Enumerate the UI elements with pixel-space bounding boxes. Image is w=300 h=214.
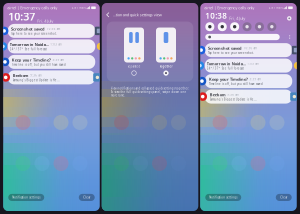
staticText: 24° / 37° See full forecast [207, 67, 244, 70]
staticText: Samsung's Biggest Update is He... [13, 78, 60, 82]
staticText: 10:36 am [244, 46, 257, 50]
staticText: 10:38 [205, 10, 227, 21]
staticText: Fri, 4 July [229, 15, 245, 21]
staticText: Keep your Timeline? [12, 57, 51, 63]
button[interactable]: Together [163, 70, 169, 76]
staticText: Clear [83, 196, 90, 199]
button[interactable]: Clear [276, 194, 292, 201]
staticText: View notifications and collapsed quick s… [110, 87, 189, 97]
staticText: 10:36 am [47, 27, 60, 31]
button[interactable]: Notification settings [205, 194, 241, 201]
staticText: 24° / 37° See full forecast [10, 47, 47, 51]
button[interactable]: Flashlight [255, 22, 264, 31]
staticText: Tomorrow in Noida... [207, 61, 246, 66]
staticText: Tap here to see your screenshot. [208, 51, 254, 55]
button[interactable]: Tomorrow in Noida... [205, 59, 292, 73]
staticText: Notification settings [12, 196, 40, 199]
button[interactable]: Beebom [8, 70, 95, 84]
button[interactable]: Bluetooth [218, 22, 227, 31]
staticText: 9:36 am [227, 93, 238, 96]
staticText: ...tion and quick settings view [113, 12, 162, 17]
staticText: Notification settings [209, 196, 237, 199]
staticText: Timeline is off, but you still have save… [12, 63, 66, 66]
button[interactable]: Wi-Fi [205, 22, 214, 31]
staticText: Beebom [210, 92, 226, 97]
button[interactable]: Keep your Timeline? [8, 55, 95, 69]
staticText: Tap here to see your screenshot. [11, 32, 57, 35]
staticText: Beebom [13, 73, 29, 78]
staticText: 4.81 KB/s [269, 6, 283, 9]
button[interactable]: Beebom [205, 90, 292, 104]
staticText: 10:37 [8, 9, 35, 24]
staticText: 3:39 am [52, 58, 63, 62]
button[interactable]: Tomorrow in Noida... [8, 39, 95, 53]
staticText: Screenshot saved [11, 26, 45, 32]
staticText: 1:03 am [247, 62, 258, 65]
staticText: Clear [280, 196, 287, 199]
button[interactable]: Clear [79, 194, 95, 201]
staticText: 3:39 am [249, 77, 260, 81]
button[interactable]: Screenshot saved [8, 24, 95, 38]
button[interactable]: Back [106, 12, 110, 18]
button[interactable]: More options [288, 34, 292, 39]
staticText: Keep your Timeline? [209, 76, 248, 82]
staticText: 1:03 am [50, 43, 61, 46]
button[interactable]: Notification settings [8, 194, 44, 201]
staticText: Separated [127, 65, 140, 68]
staticText: 9:36 am [30, 74, 41, 77]
button[interactable]: Auto rotate [242, 22, 252, 31]
staticText: Timeline is off, but you still have save… [209, 82, 263, 86]
staticText: airtel | Emergency calls only [204, 5, 254, 10]
staticText: Tomorrow in Noida... [10, 42, 49, 47]
button[interactable]: Separated [131, 70, 137, 76]
staticText: Screenshot saved [208, 45, 242, 51]
staticText: airtel | Emergency calls only [7, 5, 57, 10]
staticText: Together [159, 65, 172, 68]
button[interactable]: Screenshot saved [205, 43, 292, 57]
button[interactable]: Keep your Timeline? [205, 74, 292, 88]
button[interactable]: Sound [230, 22, 239, 31]
staticText: Samsung's Biggest Update is He... [210, 98, 257, 101]
staticText: Fri, 4 July [37, 18, 53, 23]
button[interactable]: Settings [287, 16, 292, 21]
staticText: 4.81 KB/s [72, 6, 86, 9]
button[interactable]: Power saving [267, 22, 276, 31]
